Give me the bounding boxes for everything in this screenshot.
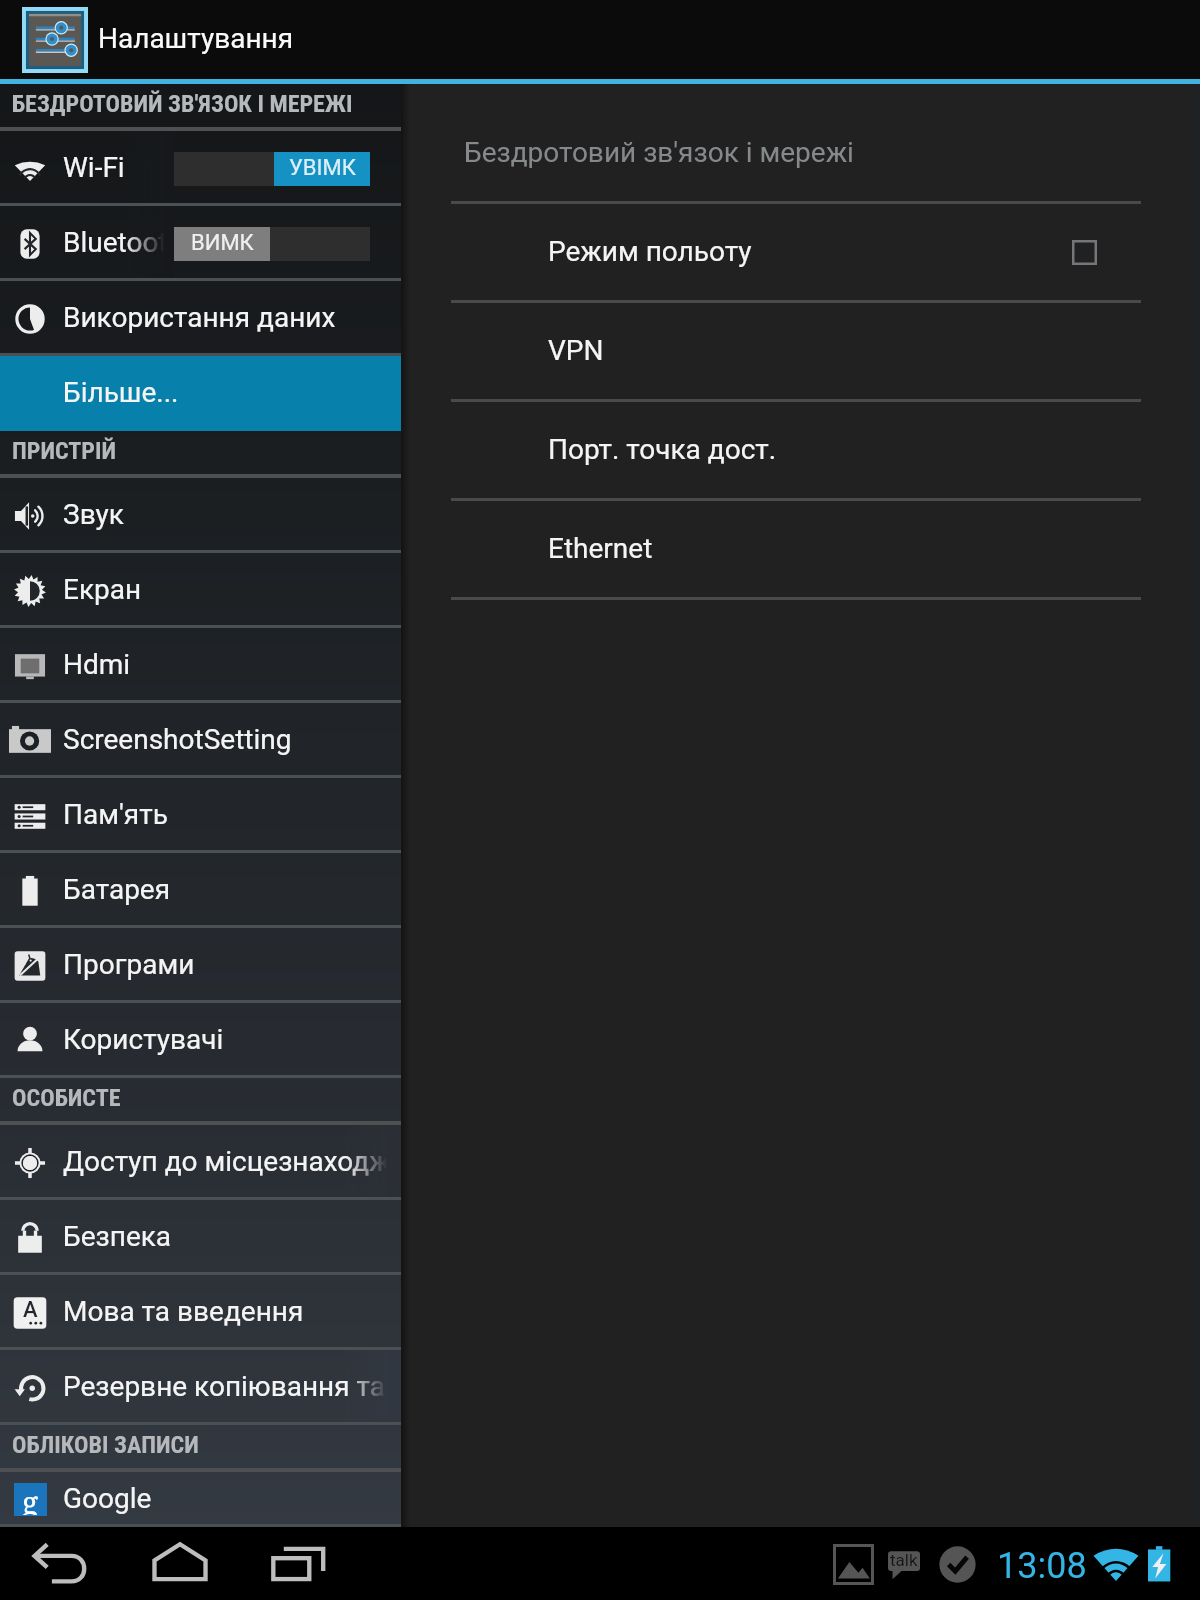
staticText: Налаштування [98, 22, 294, 55]
staticText: Користувачі [63, 1023, 224, 1056]
staticText: ScreenshotSetting [63, 723, 292, 756]
button[interactable]: A [0, 1275, 401, 1350]
staticText: Безпека [63, 1220, 172, 1253]
button[interactable]: Home [120, 1527, 240, 1600]
staticText: VPN [548, 334, 604, 367]
staticText: Бездротовий зв'язок і мережі [464, 136, 854, 169]
staticText: Звук [63, 498, 124, 531]
button[interactable]: ВИМК [174, 227, 370, 261]
button[interactable]: Режим польоту [401, 204, 1200, 300]
button[interactable]: Hdmi [0, 628, 401, 703]
staticText: Hdmi [63, 648, 131, 681]
staticText: g [22, 1482, 39, 1515]
staticText: Google [63, 1482, 152, 1515]
staticText: 13:08 [997, 1545, 1087, 1587]
staticText: ПРИСТРІЙ [12, 437, 116, 465]
staticText: ВИМК [191, 230, 254, 256]
button[interactable]: Звук [0, 478, 401, 553]
button[interactable]: Back [0, 1527, 120, 1600]
button[interactable]: ScreenshotSetting [0, 703, 401, 778]
staticText: Порт. точка дост. [548, 433, 777, 466]
button[interactable]: Пам'ять [0, 778, 401, 853]
staticText: Більше... [63, 376, 179, 409]
button[interactable]: Екран [0, 553, 401, 628]
staticText: Wi-Fi [63, 151, 125, 184]
staticText: Доступ до місцезнаходження [63, 1145, 401, 1178]
button[interactable]: g [0, 1472, 401, 1527]
staticText: Програми [63, 948, 195, 981]
button[interactable]: Батарея [0, 853, 401, 928]
staticText: ОБЛІКОВІ ЗАПИСИ [12, 1431, 199, 1459]
staticText: Режим польоту [548, 235, 752, 268]
staticText: ОСОБИСТЕ [12, 1084, 121, 1112]
button[interactable]: Toggle airplane mode [1067, 235, 1101, 269]
staticText: Екран [63, 573, 142, 606]
button[interactable]: Wi-Fi [0, 131, 401, 206]
staticText: Мова та введення [63, 1295, 304, 1328]
staticText: Резервне копіювання та скидання [63, 1370, 401, 1403]
button[interactable]: Recent apps [240, 1527, 360, 1600]
staticText: УВІМК [289, 155, 356, 181]
staticText: Використання даних [63, 301, 336, 334]
button[interactable]: Більше... [0, 356, 401, 431]
staticText: Ethernet [548, 532, 653, 565]
button[interactable]: Доступ до місцезнаходження [0, 1125, 401, 1200]
button[interactable]: Користувачі [0, 1003, 401, 1078]
button[interactable]: Безпека [0, 1200, 401, 1275]
staticText: Пам'ять [63, 798, 168, 831]
button[interactable]: VPN [401, 303, 1200, 399]
staticText: talk [890, 1550, 918, 1570]
button[interactable]: Використання даних [0, 281, 401, 356]
staticText: Батарея [63, 873, 171, 906]
button[interactable]: Settings [22, 7, 88, 73]
button[interactable]: Програми [0, 928, 401, 1003]
button[interactable]: Bluetooth [0, 206, 401, 281]
button[interactable]: УВІМК [174, 152, 370, 186]
staticText: Bluetooth [63, 226, 183, 259]
button[interactable]: Резервне копіювання та скидання [0, 1350, 401, 1425]
staticText: A [23, 1297, 38, 1323]
button[interactable]: Ethernet [401, 501, 1200, 597]
button[interactable]: Порт. точка дост. [401, 402, 1200, 498]
staticText: БЕЗДРОТОВИЙ ЗВ'ЯЗОК І МЕРЕЖІ [12, 90, 353, 118]
